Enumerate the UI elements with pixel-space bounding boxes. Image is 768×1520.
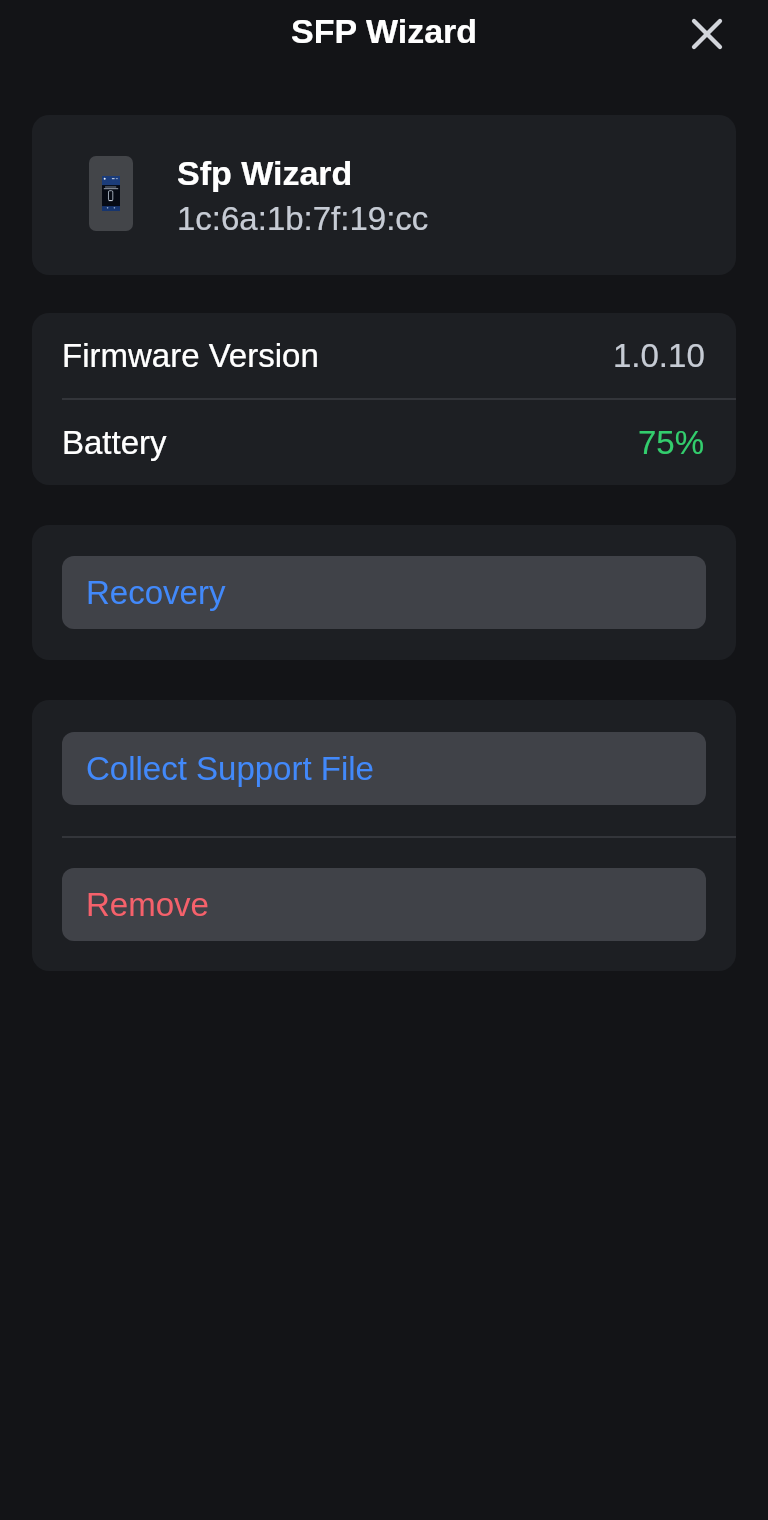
staticText: Battery: [62, 424, 167, 461]
staticText: 1.0.10: [613, 337, 705, 374]
button[interactable]: Firmware Version: [32, 313, 736, 398]
staticText: 75%: [638, 424, 705, 461]
button[interactable]: Collect Support File: [62, 732, 706, 805]
staticText: Firmware Version: [62, 337, 319, 374]
button[interactable]: Battery: [32, 400, 736, 485]
staticText: Sfp Wizard: [177, 154, 353, 192]
staticText: Collect Support File: [86, 750, 374, 787]
button[interactable]: Close: [679, 6, 735, 62]
staticText: 1c:6a:1b:7f:19:cc: [177, 200, 429, 237]
button[interactable]: Remove: [62, 868, 706, 941]
staticText: Recovery: [86, 574, 226, 611]
staticText: Remove: [86, 886, 209, 923]
staticText: SFP Wizard: [291, 12, 478, 50]
button[interactable]: Recovery: [62, 556, 706, 629]
button[interactable]: Sfp Wizard: [32, 115, 736, 275]
